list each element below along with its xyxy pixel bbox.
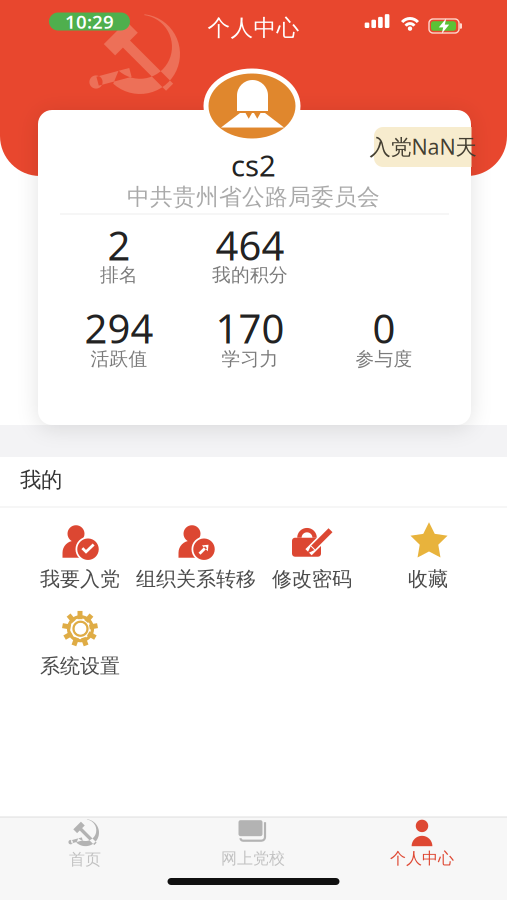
- staticText: 网上党校: [221, 849, 285, 868]
- button[interactable]: 首页: [25, 818, 145, 870]
- button[interactable]: 收藏: [363, 521, 493, 593]
- button[interactable]: 个人中心: [362, 818, 482, 870]
- staticText: 系统设置: [40, 654, 120, 678]
- staticText: 我的: [20, 467, 62, 493]
- button[interactable]: 修改密码: [247, 521, 377, 593]
- staticText: 排名: [100, 263, 138, 286]
- staticText: 活跃值: [90, 347, 147, 370]
- button[interactable]: 网上党校: [193, 818, 313, 870]
- staticText: 170: [215, 301, 284, 354]
- staticText: 0: [372, 301, 395, 354]
- staticText: 我要入党: [40, 567, 120, 591]
- staticText: 464: [215, 218, 284, 271]
- staticText: 294: [84, 301, 153, 354]
- staticText: cs2: [231, 145, 276, 184]
- staticText: 参与度: [355, 347, 412, 370]
- button[interactable]: 组织关系转移: [131, 521, 261, 593]
- staticText: 修改密码: [272, 567, 352, 591]
- staticText: 我的积分: [212, 263, 288, 286]
- button[interactable]: 我要入党: [15, 521, 145, 593]
- staticText: 首页: [69, 850, 101, 869]
- staticText: 学习力: [221, 347, 278, 370]
- button[interactable]: 系统设置: [15, 608, 145, 680]
- staticText: 10:29: [65, 9, 114, 34]
- staticText: 入党NaN天: [369, 132, 476, 161]
- staticText: 中共贵州省公路局委员会: [127, 183, 380, 211]
- staticText: 收藏: [408, 567, 448, 591]
- staticText: 个人中心: [207, 14, 299, 42]
- staticText: 组织关系转移: [136, 567, 256, 591]
- staticText: 个人中心: [390, 849, 454, 868]
- staticText: 2: [107, 218, 130, 271]
